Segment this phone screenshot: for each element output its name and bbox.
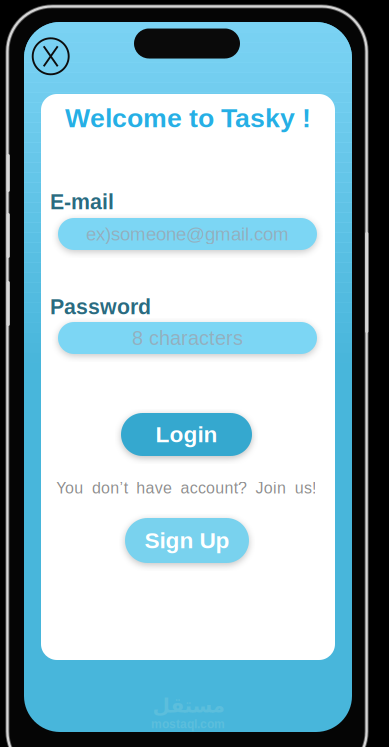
staticText: E-mail [50,190,114,214]
button[interactable]: Login [121,413,252,456]
staticText: Password [50,295,151,319]
staticText: ex)someone@gmail.com [86,224,289,244]
staticText: Login [155,422,217,447]
staticText: mostaql.com [151,717,225,731]
button[interactable]: You don’t have account? Join us! [39,476,333,500]
staticText: Sign Up [144,528,229,553]
button[interactable]: Close [33,38,69,74]
staticText: 8 characters [132,327,243,349]
staticText: مستقل [152,694,224,717]
button[interactable]: Sign Up [125,518,249,563]
staticText: Welcome to Tasky ! [65,103,311,133]
staticText: You don’t have account? Join us! [56,479,316,497]
